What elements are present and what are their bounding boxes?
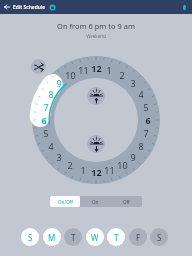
staticText: 6 <box>145 114 151 126</box>
staticText: 1 <box>80 164 86 176</box>
staticText: T <box>71 232 76 243</box>
staticText: 11 <box>104 164 115 176</box>
staticText: 12 <box>91 166 102 178</box>
staticText: On from 6 pm to 9 am <box>57 21 135 31</box>
staticText: 8 <box>48 88 54 100</box>
staticText: 4 <box>48 140 54 152</box>
staticText: S <box>157 232 162 243</box>
staticText: Edit Schedule <box>13 4 46 11</box>
staticText: 3 <box>56 151 62 163</box>
button[interactable]: Back <box>1 1 13 13</box>
staticText: 8 <box>138 140 144 152</box>
button[interactable]: T <box>64 228 82 246</box>
staticText: 5 <box>143 101 149 113</box>
staticText: 10 <box>117 159 128 171</box>
button[interactable]: F <box>129 228 147 246</box>
staticText: 7 <box>143 127 149 139</box>
button[interactable]: Help <box>48 3 57 12</box>
staticText: Weekend <box>86 33 106 39</box>
button[interactable]: On <box>80 196 111 207</box>
staticText: 9 <box>130 151 136 163</box>
staticText: S <box>28 232 33 243</box>
button[interactable]: Shuffle start and end <box>31 59 46 74</box>
staticText: W <box>91 232 99 243</box>
staticText: 2 <box>67 159 73 171</box>
staticText: 11 <box>78 64 89 76</box>
button[interactable]: S <box>21 228 39 246</box>
staticText: 9 <box>56 77 62 89</box>
button[interactable]: M <box>43 228 61 246</box>
staticText: 5 <box>43 127 49 139</box>
button[interactable]: W <box>86 228 104 246</box>
staticText: 6 <box>41 114 47 126</box>
button[interactable]: S <box>150 228 168 246</box>
staticText: On/Off <box>58 199 73 205</box>
staticText: T <box>114 232 119 243</box>
staticText: F <box>136 232 141 243</box>
staticText: Off <box>123 199 130 205</box>
staticText: 10 <box>65 69 76 81</box>
staticText: 12 <box>91 62 102 74</box>
staticText: 7 <box>43 101 49 113</box>
staticText: 4 <box>138 88 144 100</box>
button[interactable]: Sunrise time <box>87 87 105 105</box>
staticText: 3 <box>130 77 136 89</box>
button[interactable]: Sunset time <box>87 135 105 153</box>
staticText: 1 <box>106 64 112 76</box>
button[interactable]: Off <box>111 196 142 207</box>
staticText: On <box>92 199 99 205</box>
button[interactable]: T <box>107 228 125 246</box>
staticText: 2 <box>119 69 125 81</box>
button[interactable]: On/Off <box>50 196 80 207</box>
staticText: M <box>48 232 56 243</box>
